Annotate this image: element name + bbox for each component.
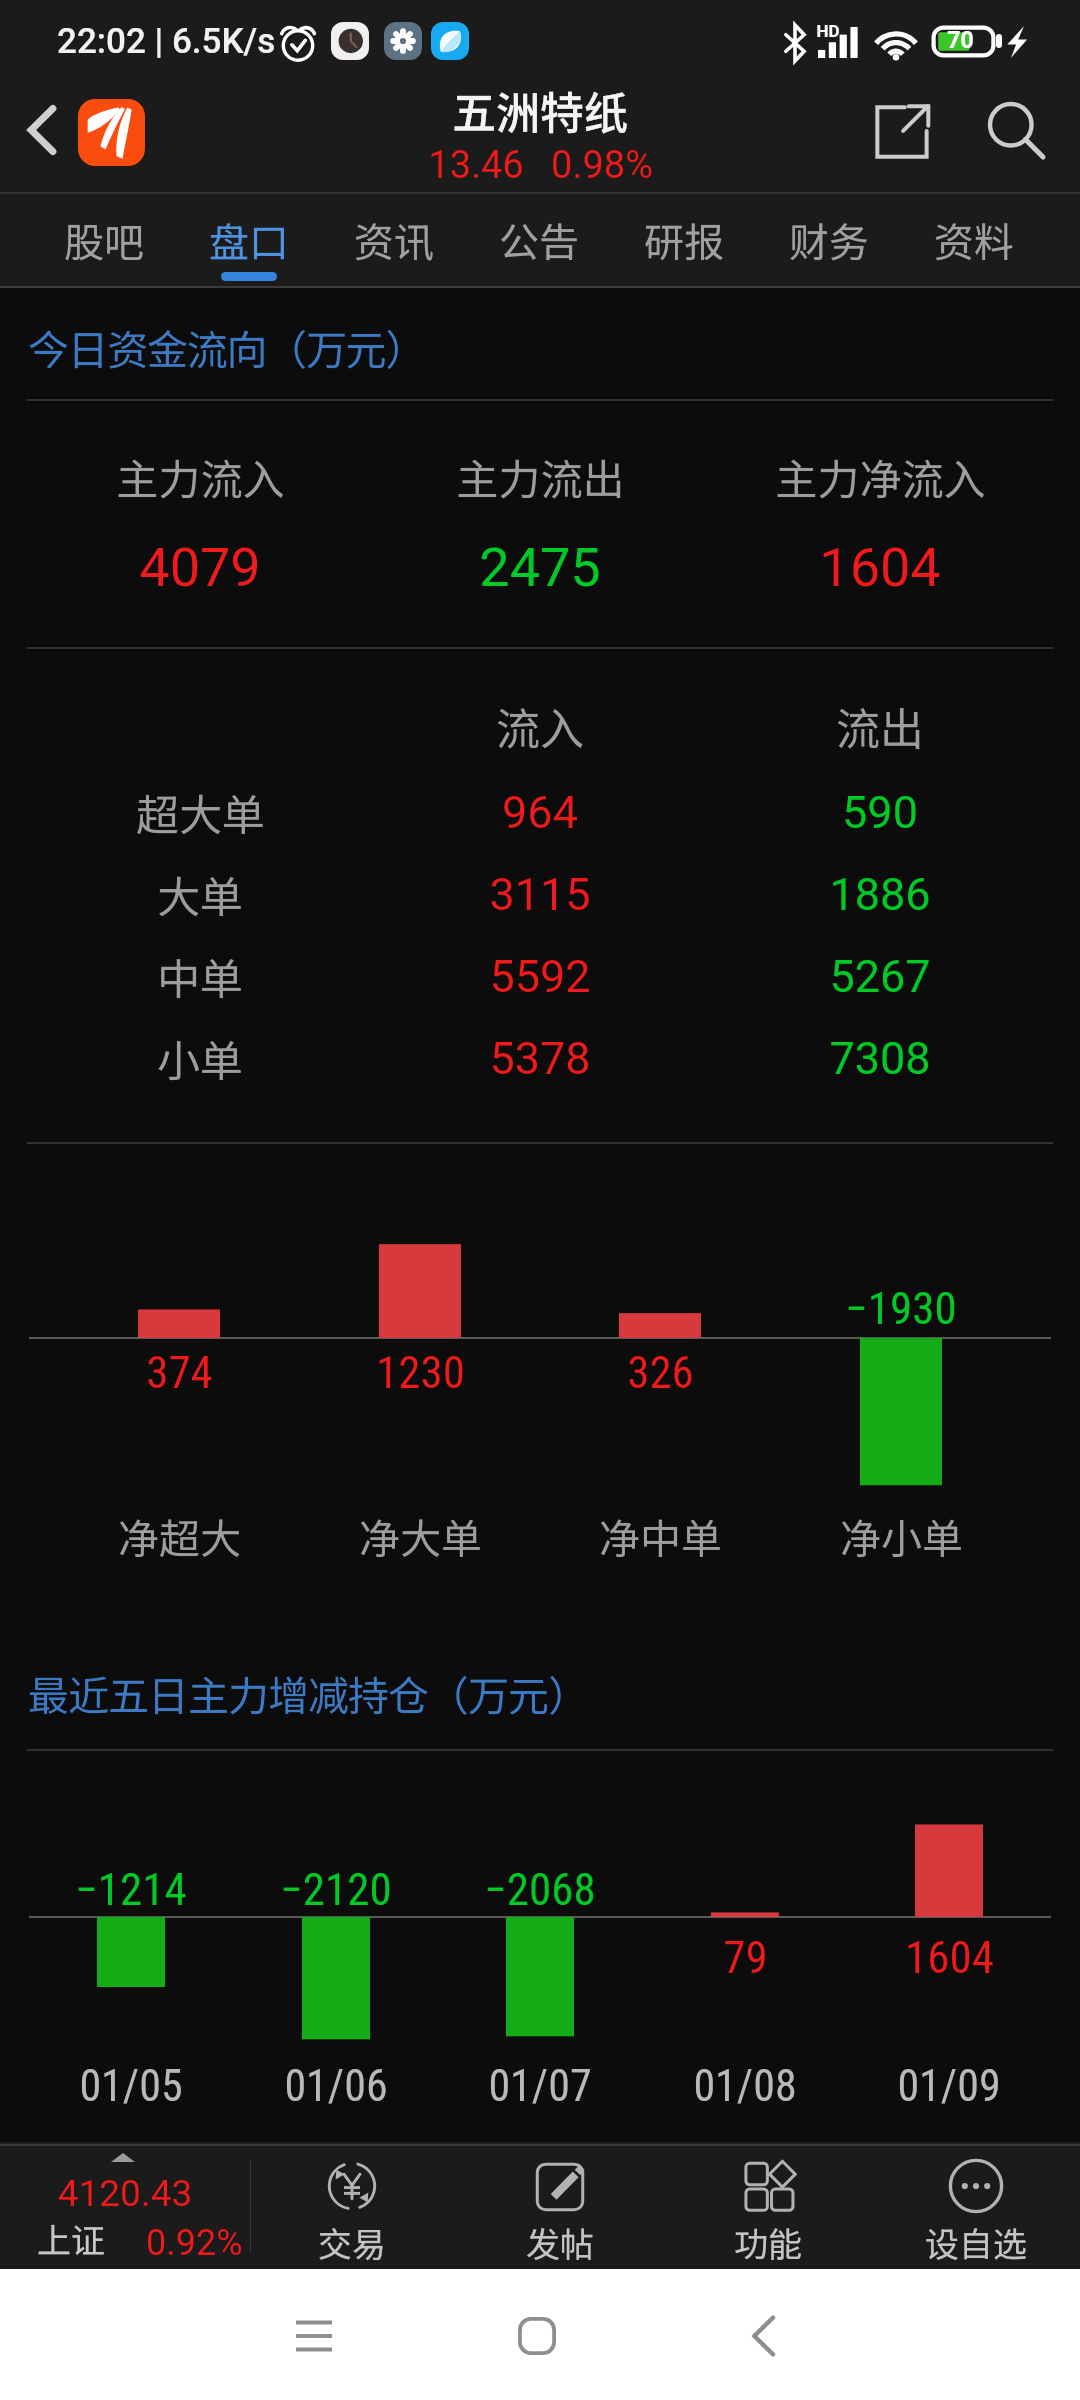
- staticText: 7308: [829, 1032, 931, 1085]
- staticText: 22:02 | 6.5K/s: [57, 21, 276, 62]
- staticText: 374: [146, 1346, 213, 1399]
- button[interactable]: 财务: [757, 193, 901, 287]
- staticText: 964: [502, 786, 578, 839]
- staticText: 公告: [467, 211, 611, 269]
- staticText: 590: [842, 786, 918, 839]
- staticText: 4079: [139, 536, 261, 599]
- staticText: 上证: [37, 2214, 105, 2263]
- button[interactable]: 设自选: [872, 2142, 1080, 2269]
- staticText: 2475: [479, 536, 601, 599]
- staticText: 01/09: [897, 2060, 1001, 2112]
- staticText: 五洲特纸: [0, 78, 1080, 142]
- staticText: 今日资金流向（万元）: [28, 317, 425, 376]
- staticText: 功能: [664, 2218, 872, 2267]
- staticText: 研报: [612, 211, 756, 269]
- button[interactable]: 发帖: [456, 2142, 664, 2269]
- staticText: 股吧: [32, 211, 176, 269]
- staticText: −2120: [280, 1863, 392, 1916]
- button[interactable]: Back: [714, 2286, 814, 2386]
- staticText: 01/08: [693, 2060, 797, 2112]
- staticText: −1930: [845, 1282, 957, 1335]
- button[interactable]: 研报: [612, 193, 756, 287]
- button[interactable]: 最近五日主力增减持仓（万元）: [28, 1663, 588, 1722]
- staticText: −2068: [484, 1863, 596, 1916]
- button[interactable]: 功能: [664, 2142, 872, 2269]
- button[interactable]: Recent apps: [264, 2286, 364, 2386]
- staticText: 13.46: [428, 143, 524, 188]
- staticText: 1604: [819, 536, 941, 599]
- staticText: 主力流出: [456, 446, 625, 507]
- staticText: 交易: [248, 2218, 456, 2267]
- staticText: 5592: [489, 950, 591, 1003]
- staticText: 流出: [836, 694, 924, 758]
- button[interactable]: 股吧: [32, 193, 176, 287]
- staticText: 小单: [157, 1027, 243, 1089]
- staticText: 大单: [157, 863, 243, 925]
- staticText: 净大单: [359, 1506, 482, 1565]
- button[interactable]: Search: [984, 98, 1050, 164]
- staticText: 5267: [829, 950, 931, 1003]
- staticText: 79: [723, 1931, 768, 1984]
- staticText: 5378: [489, 1032, 591, 1085]
- staticText: 70: [947, 27, 974, 54]
- staticText: 发帖: [456, 2218, 664, 2267]
- button[interactable]: 盘口: [177, 193, 321, 287]
- staticText: 财务: [757, 211, 901, 269]
- staticText: 中单: [157, 945, 243, 1007]
- staticText: HD: [816, 21, 840, 41]
- staticText: −1214: [75, 1863, 187, 1916]
- staticText: 主力流入: [116, 446, 285, 507]
- staticText: 01/06: [284, 2060, 388, 2112]
- button[interactable]: 4120.43: [0, 2142, 250, 2269]
- staticText: 01/07: [488, 2060, 592, 2112]
- button[interactable]: Back: [11, 99, 73, 161]
- staticText: 超大单: [136, 781, 265, 843]
- staticText: 3115: [489, 868, 591, 921]
- button[interactable]: 资料: [902, 193, 1046, 287]
- button[interactable]: East Money: [78, 99, 145, 166]
- staticText: 主力净流入: [775, 446, 986, 507]
- button[interactable]: Share: [869, 99, 935, 165]
- staticText: 4120.43: [0, 2172, 250, 2215]
- staticText: 资讯: [322, 211, 466, 269]
- button[interactable]: 交易: [248, 2142, 456, 2269]
- staticText: 1604: [905, 1931, 994, 1984]
- staticText: 流入: [496, 694, 584, 758]
- staticText: 1230: [376, 1346, 465, 1399]
- staticText: 0.98%: [551, 143, 653, 188]
- staticText: 01/05: [79, 2060, 183, 2112]
- staticText: 0.92%: [146, 2222, 243, 2264]
- staticText: 设自选: [872, 2218, 1080, 2267]
- staticText: 326: [627, 1346, 694, 1399]
- button[interactable]: 公告: [467, 193, 611, 287]
- staticText: 净中单: [599, 1506, 722, 1565]
- staticText: 1886: [829, 868, 931, 921]
- staticText: 资料: [902, 211, 1046, 269]
- staticText: 净小单: [840, 1506, 963, 1565]
- staticText: 最近五日主力增减持仓（万元）: [28, 1663, 588, 1722]
- button[interactable]: 今日资金流向（万元）: [28, 317, 425, 376]
- button[interactable]: Home: [487, 2286, 587, 2386]
- button[interactable]: 资讯: [322, 193, 466, 287]
- staticText: 盘口: [177, 211, 321, 269]
- staticText: 净超大: [118, 1506, 241, 1565]
